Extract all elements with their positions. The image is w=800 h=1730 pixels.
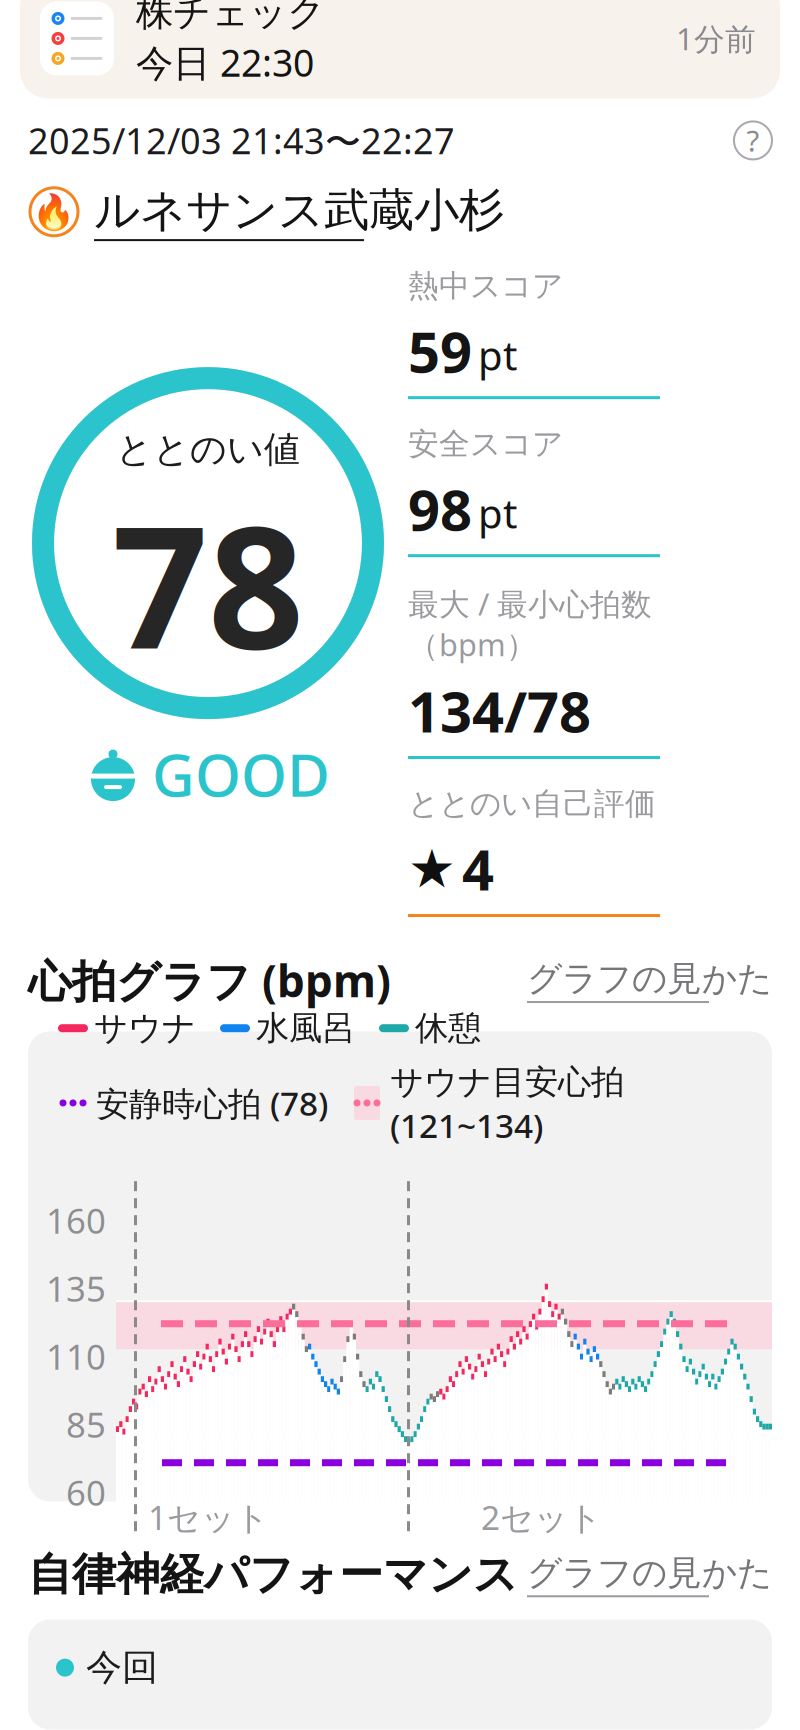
staticText: 2セット [481,1495,602,1539]
staticText: 安静時心拍 (78) [96,1081,328,1125]
staticText: 今回 [86,1645,158,1690]
button[interactable]: ヘルプ [734,121,772,159]
staticText: 1セット [148,1495,269,1539]
staticText: 株チェック [136,0,325,36]
staticText: ととのい値 [116,427,300,472]
staticText: 水風呂 [256,1008,355,1049]
staticText: 自律神経パフォーマンス [28,1547,518,1601]
staticText: 休憩 [415,1008,481,1049]
staticText: 78 [112,472,304,695]
staticText: GOOD [152,735,330,813]
staticText: ルネサンス武蔵小杉 [94,182,504,238]
staticText: 🔥 [32,192,75,232]
staticText: サウナ目安心拍 (121~134) [390,1059,624,1147]
staticText: 4 [462,832,494,906]
staticText: 60 [66,1469,106,1515]
staticText: pt [478,486,517,539]
staticText: 98 [408,472,472,546]
staticText: 59 [408,314,472,388]
staticText: ? [746,121,759,160]
staticText: 85 [66,1401,106,1447]
staticText: 134/78 [408,674,591,748]
staticText: 最大 / 最小心拍数（bpm） [408,583,652,665]
staticText: 135 [46,1265,106,1311]
staticText: 2025/12/03 21:43〜22:27 [28,116,455,164]
staticText: 今日 22:30 [136,38,314,87]
staticText: 熱中スコア [408,267,563,305]
button[interactable]: 🔥 [0,182,800,241]
staticText: グラフの見かた [527,957,772,1000]
staticText: ととのい自己評価 [408,785,656,823]
button[interactable]: 株チェック [0,0,800,98]
staticText: 110 [46,1333,106,1379]
staticText: 心拍グラフ (bpm) [28,951,391,1009]
staticText: 1分前 [676,18,756,59]
staticText: pt [478,328,517,381]
staticText: 160 [46,1197,106,1243]
staticText: ★ [408,839,456,899]
staticText: サウナ [94,1008,196,1049]
button[interactable]: グラフの見かた [527,1552,772,1597]
button[interactable]: グラフの見かた [527,957,772,1003]
staticText: グラフの見かた [527,1552,772,1594]
staticText: 安全スコア [408,425,563,463]
